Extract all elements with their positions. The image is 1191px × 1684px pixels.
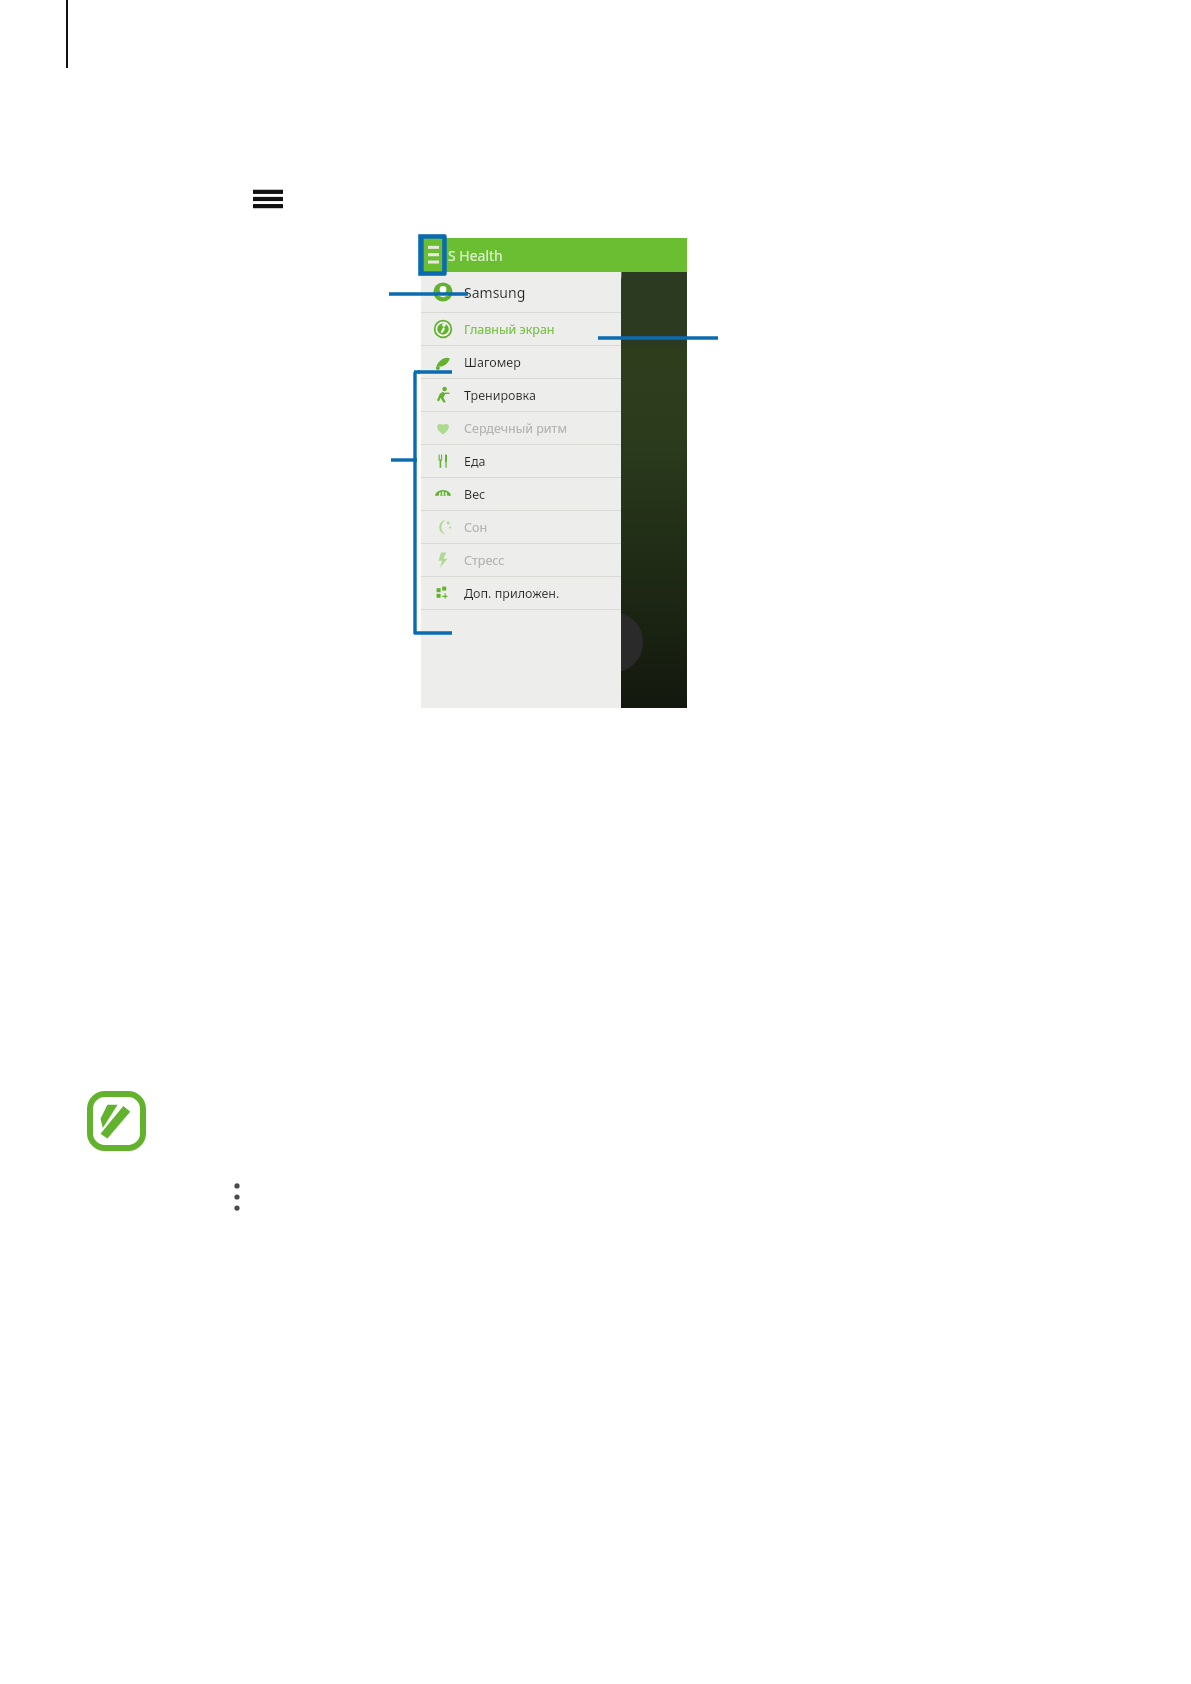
button[interactable]: Шагомер [421,346,621,378]
staticText: S Health [448,246,503,265]
staticText: Samsung [464,283,526,302]
button[interactable]: Вес [421,478,621,510]
staticText: Главный экран [464,321,555,338]
staticText: Сердечный ритм [464,420,568,437]
staticText: Шагомер [464,354,521,371]
staticText: Еда [464,453,486,470]
button[interactable]: Сердечный ритм [421,412,621,444]
staticText: ккал [431,282,451,294]
button[interactable]: Доп. приложен. [421,577,621,609]
button[interactable]: Samsung [421,272,621,312]
button[interactable]: Сон [421,511,621,543]
button[interactable]: Тренировка [421,379,621,411]
button[interactable]: More options [230,1182,244,1212]
staticText: Тренировка [464,387,536,404]
button[interactable]: Еда [421,445,621,477]
staticText: Сон [464,519,488,536]
button[interactable]: Главный экран [421,313,621,345]
button[interactable]: Menu [253,183,283,217]
button[interactable]: Стресс [421,544,621,576]
staticText: Доп. приложен. [464,585,560,602]
staticText: Стресс [464,552,505,569]
staticText: Вес [464,486,486,503]
